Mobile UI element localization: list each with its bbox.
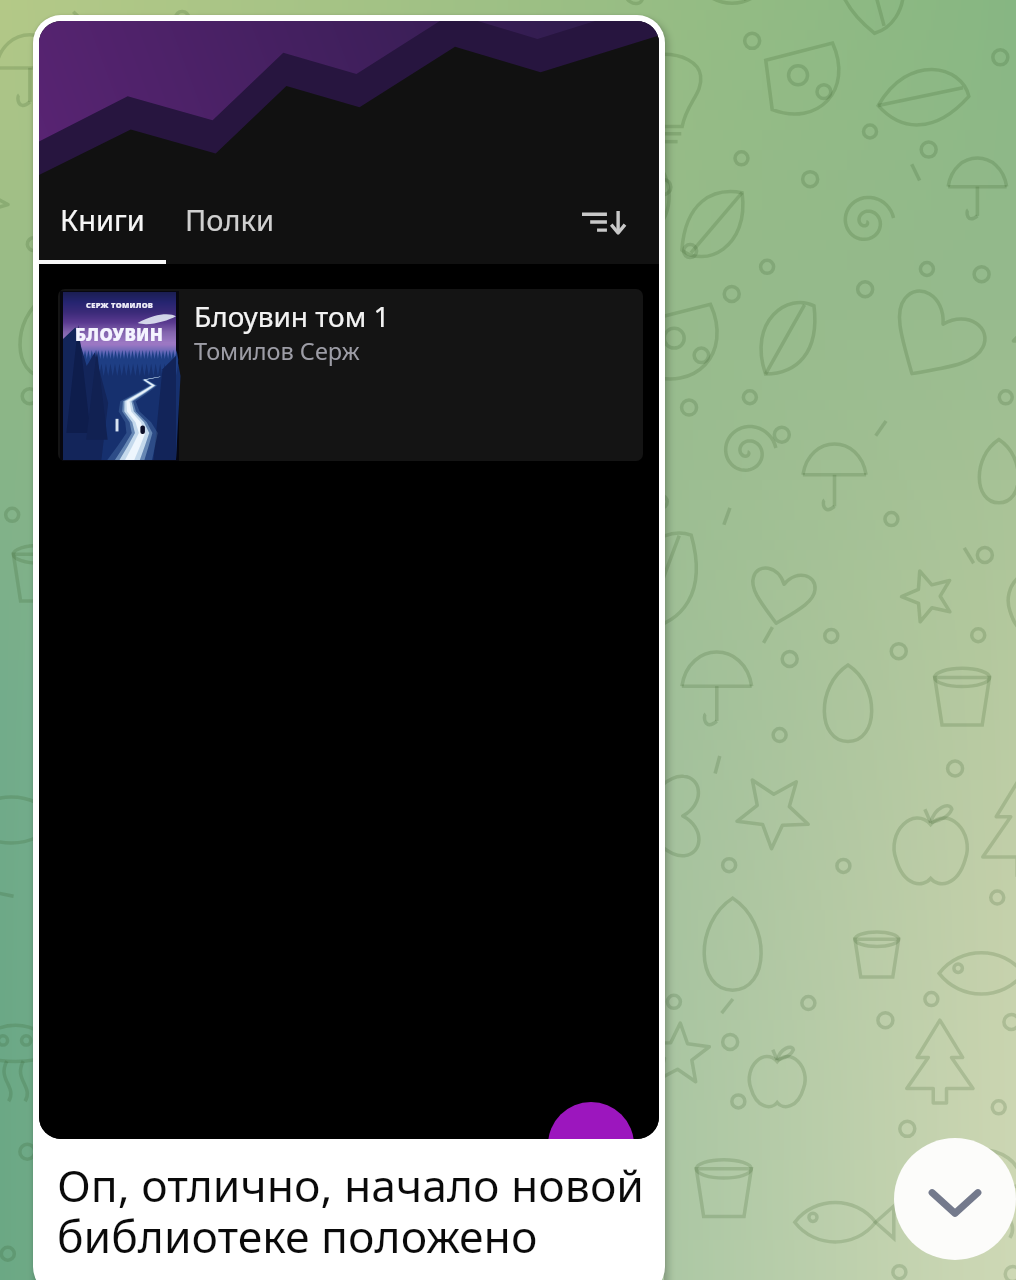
staticText: БЛОУВИН	[75, 323, 164, 346]
staticText: Блоувин том 1	[194, 297, 390, 335]
staticText: Книги	[60, 200, 145, 239]
button[interactable]: Sort	[577, 192, 633, 246]
staticText: Полки	[185, 200, 274, 239]
staticText: Оп, отлично, начало новой библиотеке пол…	[57, 1154, 644, 1266]
staticText: Томилов Серж	[194, 335, 360, 367]
staticText: СЕРЖ ТОМИЛОВ	[86, 300, 154, 310]
button[interactable]: Полки	[166, 192, 293, 246]
button[interactable]: СЕРЖ ТОМИЛОВ	[58, 289, 643, 461]
button[interactable]: Add book	[548, 1102, 634, 1139]
button[interactable]: Scroll to bottom	[894, 1138, 1016, 1260]
button[interactable]: Книги	[39, 192, 166, 246]
